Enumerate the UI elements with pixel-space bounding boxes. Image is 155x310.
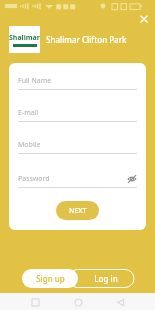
button[interactable]: Back bbox=[112, 294, 128, 310]
button[interactable]: E-mail bbox=[18, 108, 137, 122]
staticText: Log in bbox=[94, 273, 118, 284]
staticText: Shalimar bbox=[9, 33, 40, 43]
button[interactable]: Log in bbox=[78, 269, 134, 288]
button[interactable]: Show password bbox=[127, 174, 137, 184]
staticText: Mobile bbox=[18, 140, 41, 150]
button[interactable]: Home bbox=[70, 294, 86, 310]
button[interactable]: Password bbox=[18, 174, 137, 188]
button[interactable]: Full Name bbox=[18, 76, 137, 90]
staticText: Full Name bbox=[18, 76, 52, 86]
button[interactable]: NEXT bbox=[56, 201, 99, 220]
staticText: NEXT bbox=[69, 206, 87, 216]
button[interactable]: Mobile bbox=[18, 140, 137, 154]
button[interactable]: Sign up bbox=[22, 269, 78, 288]
staticText: E-mail bbox=[18, 108, 39, 118]
button[interactable]: Recents bbox=[27, 294, 43, 310]
button[interactable]: Close bbox=[137, 12, 151, 26]
staticText: Sign up bbox=[36, 273, 65, 284]
staticText: Shalimar Clifton Park bbox=[46, 34, 127, 45]
staticText: Password bbox=[18, 174, 50, 184]
